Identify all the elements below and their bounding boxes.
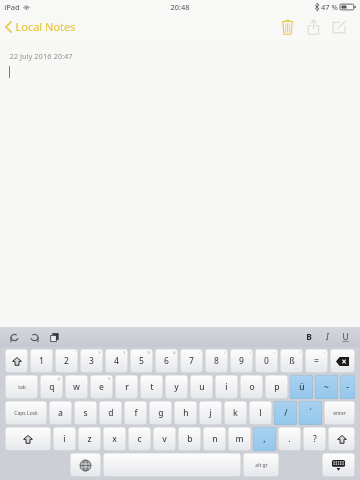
button[interactable] [328, 427, 355, 451]
button[interactable] [5, 349, 28, 373]
button[interactable]: l [249, 401, 272, 425]
button[interactable]: ~ [315, 375, 338, 399]
button[interactable]: j [199, 401, 222, 425]
staticText: n [212, 433, 218, 445]
staticText: & [173, 350, 176, 355]
button[interactable]: ß [280, 349, 303, 373]
button[interactable]: x [103, 427, 126, 451]
button[interactable]: 6 [155, 349, 178, 373]
button[interactable]: 2 [55, 349, 78, 373]
staticText: 5 [139, 355, 144, 367]
button[interactable]: = [305, 349, 328, 373]
button[interactable]: - [340, 375, 355, 399]
button[interactable]: p [265, 375, 288, 399]
button[interactable]: m [228, 427, 251, 451]
button[interactable]: Caps Lock [5, 401, 47, 425]
button[interactable]: Local Notes [0, 16, 82, 37]
button[interactable]: y [165, 375, 188, 399]
button[interactable]: 8 [205, 349, 228, 373]
staticText: tab [18, 384, 26, 391]
button[interactable]: Paste [44, 327, 64, 347]
staticText: $ [123, 350, 126, 355]
staticText: ? [299, 350, 301, 355]
button[interactable]: o [240, 375, 263, 399]
staticText: z [87, 433, 92, 445]
button[interactable] [322, 453, 355, 477]
staticText: enter [333, 410, 346, 417]
button[interactable]: B [300, 327, 318, 347]
staticText: i [225, 381, 228, 393]
button[interactable] [70, 453, 101, 477]
staticText: 9 [239, 355, 244, 367]
button[interactable]: i [215, 375, 238, 399]
button[interactable]: f [124, 401, 147, 425]
button[interactable]: ´ [299, 401, 322, 425]
staticText: " [74, 350, 76, 355]
button[interactable]: ü [290, 375, 313, 399]
staticText: y [174, 381, 179, 393]
staticText: . [288, 433, 291, 445]
staticText: 1 [39, 355, 44, 367]
button[interactable]: d [99, 401, 122, 425]
button[interactable]: tab [5, 375, 38, 399]
staticText: 8 [214, 355, 219, 367]
button[interactable]: / [274, 401, 297, 425]
button[interactable]: r [115, 375, 138, 399]
staticText: ü [299, 381, 305, 393]
button[interactable]: 4 [105, 349, 128, 373]
staticText: v [162, 433, 167, 445]
button[interactable]: 1 [30, 349, 53, 373]
button[interactable]: New note [326, 15, 352, 39]
button[interactable] [5, 427, 51, 451]
button[interactable]: 7 [180, 349, 203, 373]
staticText: r [125, 381, 129, 393]
button[interactable]: t [140, 375, 163, 399]
staticText: / [284, 407, 288, 419]
button[interactable]: Delete note [274, 15, 300, 39]
button[interactable]: w [65, 375, 88, 399]
button[interactable]: q [40, 375, 63, 399]
staticText: 47 % [321, 2, 338, 12]
button[interactable]: alt gr [243, 453, 279, 477]
staticText: t [150, 381, 154, 393]
staticText: g [158, 407, 164, 419]
staticText: 3 [89, 355, 94, 367]
button[interactable]: , [253, 427, 276, 451]
button[interactable]: 0 [255, 349, 278, 373]
button[interactable]: e [90, 375, 113, 399]
button[interactable]: enter [324, 401, 355, 425]
button[interactable]: 3 [80, 349, 103, 373]
button[interactable]: a [49, 401, 72, 425]
button[interactable]: k [224, 401, 247, 425]
button[interactable]: . [278, 427, 301, 451]
button[interactable]: 9 [230, 349, 253, 373]
button[interactable]: g [149, 401, 172, 425]
button[interactable]: 5 [130, 349, 153, 373]
staticText: 22 July 2016 20:47 [9, 51, 73, 61]
button[interactable]: ? [303, 427, 326, 451]
button[interactable]: b [178, 427, 201, 451]
button[interactable]: z [78, 427, 101, 451]
staticText: 0 [264, 355, 269, 367]
button[interactable]: Share [300, 15, 326, 39]
staticText: Caps Lock [14, 410, 38, 417]
button[interactable]: Undo [4, 327, 24, 347]
button[interactable]: v [153, 427, 176, 451]
button[interactable]: U [336, 327, 354, 347]
button[interactable]: Redo [24, 327, 44, 347]
staticText: 2 [64, 355, 69, 367]
staticText: = [314, 355, 319, 367]
button[interactable]: u [190, 375, 213, 399]
staticText: k [233, 407, 238, 419]
button[interactable]: I [318, 327, 336, 347]
button[interactable]: i [53, 427, 76, 451]
button[interactable]: n [203, 427, 226, 451]
staticText: x [112, 433, 117, 445]
staticText: e [99, 381, 104, 393]
staticText: j [209, 407, 212, 419]
button[interactable]: c [128, 427, 151, 451]
button[interactable] [330, 349, 355, 373]
button[interactable]: h [174, 401, 197, 425]
button[interactable] [103, 453, 241, 477]
button[interactable]: s [74, 401, 97, 425]
